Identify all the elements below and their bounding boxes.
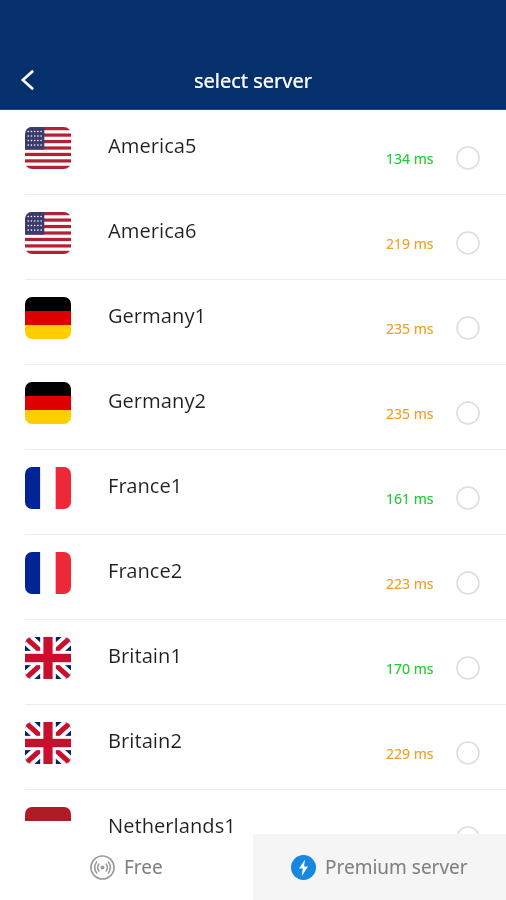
button[interactable]: Britain2 <box>0 705 506 789</box>
button[interactable]: Select France2 <box>452 567 484 599</box>
button[interactable]: Back <box>0 52 56 108</box>
button[interactable]: Free <box>0 834 253 900</box>
staticText: 223 ms <box>386 574 434 593</box>
staticText: 161 ms <box>386 489 434 508</box>
button[interactable]: Select America6 <box>452 227 484 259</box>
button[interactable]: America6 <box>0 195 506 279</box>
button[interactable]: Select Britain2 <box>452 737 484 769</box>
button[interactable]: Netherlands1 <box>0 790 506 874</box>
button[interactable]: Select Britain1 <box>452 652 484 684</box>
button[interactable]: Select Germany2 <box>452 397 484 429</box>
button[interactable]: France1 <box>0 450 506 534</box>
button[interactable]: France2 <box>0 535 506 619</box>
button[interactable]: America5 <box>0 110 506 194</box>
staticText: Free <box>124 854 163 880</box>
staticText: 219 ms <box>386 234 434 253</box>
button[interactable]: Germany1 <box>0 280 506 364</box>
staticText: France2 <box>108 557 183 584</box>
button[interactable]: Premium server <box>253 834 506 900</box>
button[interactable]: Select America5 <box>452 142 484 174</box>
staticText: Premium server <box>325 854 468 880</box>
staticText: Britain1 <box>108 642 182 669</box>
button[interactable]: Select France1 <box>452 482 484 514</box>
staticText: France1 <box>108 472 183 499</box>
button[interactable]: Germany2 <box>0 365 506 449</box>
staticText: Netherlands1 <box>108 812 236 839</box>
staticText: 170 ms <box>386 659 434 678</box>
staticText: Germany2 <box>108 387 207 414</box>
staticText: Britain2 <box>108 727 182 754</box>
staticText: 145 ms <box>386 829 434 848</box>
staticText: America5 <box>108 132 197 159</box>
staticText: 134 ms <box>386 149 434 168</box>
button[interactable]: Britain1 <box>0 620 506 704</box>
staticText: 229 ms <box>386 744 434 763</box>
staticText: select server <box>0 67 506 94</box>
staticText: America6 <box>108 217 197 244</box>
staticText: 235 ms <box>386 404 434 423</box>
button[interactable]: Select Germany1 <box>452 312 484 344</box>
staticText: 235 ms <box>386 319 434 338</box>
button[interactable]: Select Netherlands1 <box>452 822 484 854</box>
staticText: Germany1 <box>108 302 207 329</box>
